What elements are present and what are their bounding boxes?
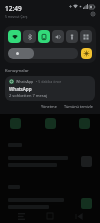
button[interactable]: Back [71, 209, 87, 223]
button[interactable]: Sound [52, 30, 64, 43]
button[interactable]: Auto rotate [80, 30, 92, 43]
staticText: Yönetme [41, 104, 57, 109]
staticText: 12:49 [5, 4, 22, 13]
staticText: • 5 dakika önce [36, 79, 62, 84]
staticText: Konuşmalar [5, 68, 29, 74]
button[interactable]: Tümünü temizle [62, 103, 95, 110]
button[interactable]: Bluetooth [23, 30, 36, 43]
button[interactable]: WhatsApp [5, 76, 95, 101]
button[interactable]: Recents [13, 209, 29, 223]
staticText: 5 mevcut Çarş [5, 14, 28, 19]
staticText: 2 sohbetten 7 mesaj [9, 93, 48, 98]
button[interactable]: Auto brightness [81, 48, 92, 59]
staticText: Tümünü temizle [64, 104, 93, 109]
button[interactable]: Wi-Fi [8, 30, 21, 43]
button[interactable]: Settings [90, 11, 95, 16]
staticText: WhatsApp [9, 86, 32, 92]
button[interactable]: Yönetme [39, 103, 59, 110]
button[interactable]: Mobile data [38, 30, 50, 43]
button[interactable]: Flashlight [66, 30, 78, 43]
staticText: WhatsApp [16, 79, 34, 84]
button[interactable]: Brightness [8, 48, 78, 59]
button[interactable]: Home [42, 209, 58, 223]
